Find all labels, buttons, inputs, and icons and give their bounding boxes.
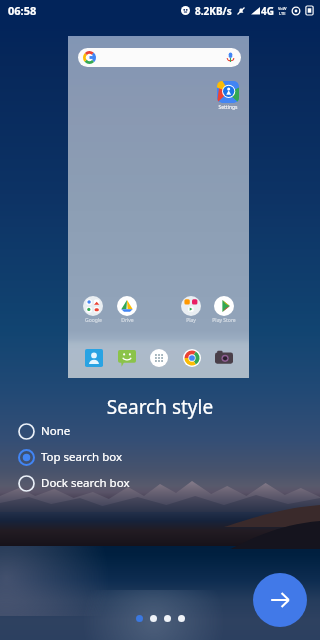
button[interactable]: Chrome [183,349,201,367]
staticText: Google [85,317,102,324]
button[interactable]: Page indicator [136,615,143,622]
button[interactable]: Google [83,296,103,316]
staticText: 8.2KB/s [195,4,232,18]
button[interactable]: Contacts [85,349,103,367]
staticText: Play [186,317,196,324]
button[interactable]: None [16,418,216,444]
button[interactable]: Settings [217,81,239,103]
button[interactable]: Page indicator [178,615,185,622]
staticText: Play Store [212,317,236,324]
button[interactable]: Top search box [16,444,216,470]
staticText: 06:58 [8,3,37,18]
staticText: Dock search box [41,475,130,491]
button[interactable]: Search [78,48,241,67]
button[interactable]: Next [253,573,307,627]
staticText: Search style [0,394,320,420]
button[interactable]: Apps [150,349,168,367]
button[interactable]: Dock search box [16,470,216,496]
staticText: Settings [218,104,238,111]
staticText: VoW [278,6,287,11]
staticText: LTE [279,11,286,16]
staticText: Drive [121,317,134,324]
button[interactable]: Play Store [214,296,234,316]
staticText: Top search box [41,449,123,465]
button[interactable]: Camera [215,349,233,367]
staticText: None [41,423,71,439]
button[interactable]: Messages [118,349,136,367]
staticText: 4G [261,4,274,18]
button[interactable]: Page indicator [150,615,157,622]
button[interactable]: Page indicator [164,615,171,622]
button[interactable]: Drive [117,296,137,316]
button[interactable]: Play [181,296,201,316]
